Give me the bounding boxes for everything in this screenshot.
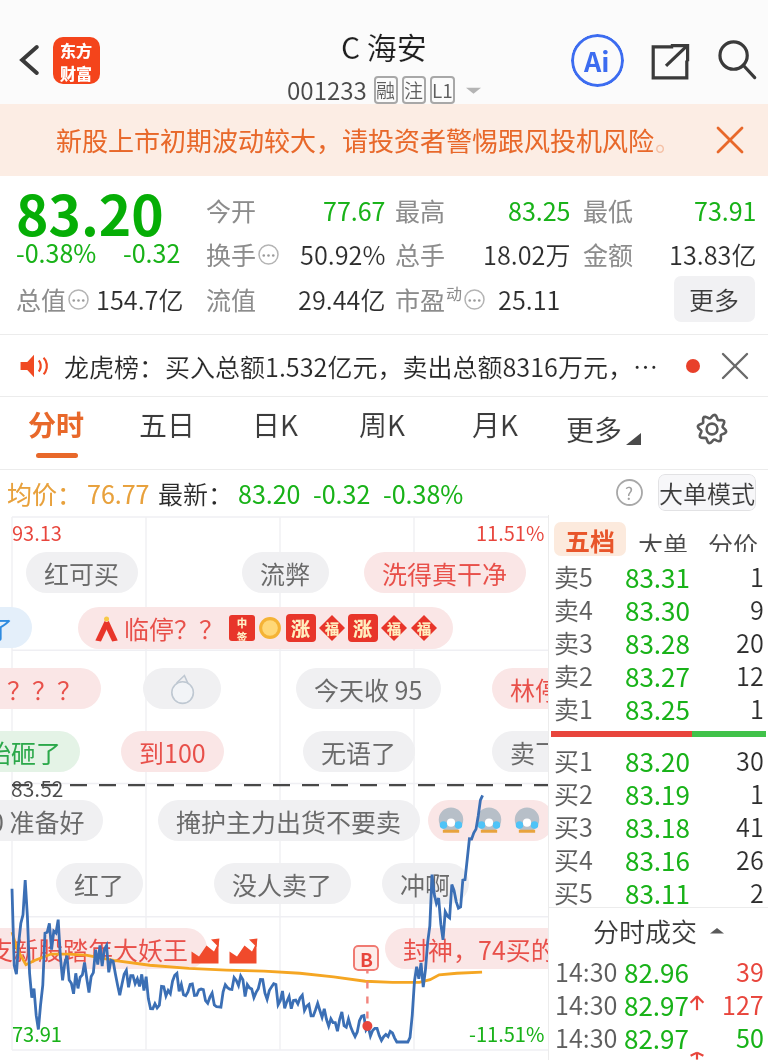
staticText: 东方 [60,38,93,61]
button[interactable]: AI assistant [571,34,624,87]
button[interactable]: 始砸了 [0,731,80,772]
staticText: 更多 [689,281,740,317]
button[interactable]: 分时成交 [549,908,768,953]
button[interactable]: 掩护主力出货不要卖 [158,800,420,841]
staticText: 83.20 [16,172,164,252]
button[interactable]: 0 准备好 [0,800,103,841]
staticText: 流弊 [260,555,311,591]
staticText: 买5 [554,874,593,907]
staticText: 五日 [139,404,196,445]
button[interactable]: 洗得真干净 [364,552,526,593]
staticText: 1 [750,775,764,808]
button[interactable]: Share [644,36,696,88]
staticText: 买3 [554,808,593,841]
staticText: 13.83亿 [669,236,757,272]
staticText: 82.97 [624,986,689,1019]
button[interactable]: 周K [357,404,408,458]
button[interactable]: 红可买 [26,552,138,593]
button[interactable]: 林停 [492,668,579,709]
button[interactable]: 14:30 [549,986,768,1019]
button[interactable]: 买3 [549,808,768,841]
staticText: 涨 [353,614,373,642]
button[interactable]: ？？？？ [0,668,101,709]
button[interactable]: 临停？？ [78,607,453,649]
button[interactable]: 分价 [702,520,765,558]
staticText: 29.44亿 [298,281,386,317]
staticText: -0.38% [16,234,97,270]
button[interactable]: sticker [143,668,221,709]
button[interactable]: 大单模式 [658,474,756,511]
button[interactable]: 冲啊 [382,863,469,904]
staticText: 大单 [638,526,689,552]
button[interactable]: East Money home [53,37,100,84]
button[interactable]: 月K [470,404,521,458]
button[interactable]: 没人卖了 [214,863,351,904]
button[interactable]: 封神，74买的涨 [385,928,599,969]
staticText: 新股上市初期波动较大，请投资者警惕跟风投机风险 [56,121,655,159]
button[interactable]: 卖2 [549,657,768,690]
button[interactable]: 卖4 [549,591,768,624]
button[interactable]: 大单 [632,520,695,558]
button[interactable]: 支新股踏年大妖王 [0,928,207,969]
button[interactable]: 五档 [554,522,626,556]
button[interactable]: 更多 [674,276,755,322]
button[interactable]: 分时 [26,404,87,458]
staticText: 月K [472,404,519,445]
button[interactable]: crying stickers [428,800,554,841]
staticText: 市盈 [395,281,446,317]
button[interactable]: 14:30 [549,1019,768,1052]
staticText: 福 [387,618,401,638]
button[interactable]: Back [6,36,54,84]
staticText: 83.20 [625,742,690,775]
staticText: 83.19 [625,775,690,808]
button[interactable]: 流弊 [242,552,329,593]
staticText: 五档 [565,522,616,556]
staticText: 财富 [60,61,93,84]
staticText: 83.16 [625,841,690,874]
staticText: -0.32 [313,475,371,511]
button[interactable]: 无语了 [303,731,415,772]
staticText: Ai [584,41,610,80]
button[interactable]: 14:30 [549,953,768,986]
button[interactable]: 买5 [549,874,768,907]
staticText: 福 [325,618,339,638]
button[interactable]: 卖飞 [492,731,579,772]
staticText: ？？？？ [0,671,83,707]
staticText: 18.02万 [483,236,571,272]
button[interactable]: Search [712,34,764,86]
staticText: 9 [750,591,764,624]
staticText: -11.51% [469,1019,545,1048]
staticText: 82.97 [624,1019,689,1052]
button[interactable]: Close banner [710,120,750,160]
button[interactable]: Help [616,479,643,506]
button[interactable]: 买1 [549,742,768,775]
staticText: 总值 [16,281,67,317]
button[interactable]: 五日 [137,404,198,458]
button[interactable]: 到100 [121,731,224,772]
button[interactable]: 14:30 [549,1052,768,1060]
staticText: 。 [655,121,682,159]
button[interactable]: 了 [0,607,32,648]
button[interactable]: 买4 [549,841,768,874]
button[interactable]: 卖1 [549,690,768,723]
staticText: 注 [404,76,424,104]
button[interactable]: 卖5 [549,558,768,591]
staticText: 始砸了 [0,734,62,770]
button[interactable]: 今天收 95 [296,668,441,709]
staticText: 26 [736,841,764,874]
button[interactable]: Chart settings [688,405,736,453]
staticText: 41 [736,808,764,841]
button[interactable]: 买2 [549,775,768,808]
staticText: 30 [736,742,764,775]
button[interactable]: 更多 [566,409,641,450]
staticText: 掩护主力出货不要卖 [176,803,402,839]
staticText: 25.11 [498,281,561,317]
button[interactable]: 红了 [56,863,143,904]
staticText: 93.13 [12,518,62,547]
staticText: 83.52 [11,773,64,803]
button[interactable]: 卖3 [549,624,768,657]
button[interactable]: 日K [250,404,301,458]
staticText: B [360,945,373,971]
staticText: 最低 [583,192,634,228]
button[interactable]: Close notice [718,349,752,383]
